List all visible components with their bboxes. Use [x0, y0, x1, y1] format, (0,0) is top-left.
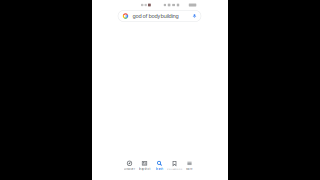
button[interactable]: Search — [152, 159, 167, 172]
button[interactable]: Snapshot — [137, 159, 152, 172]
staticText: Collections — [167, 167, 182, 170]
staticText: Discover — [124, 167, 135, 171]
staticText: More — [186, 167, 193, 171]
staticText: Search — [155, 167, 163, 171]
staticText: god of bodybuilding — [132, 12, 178, 20]
button[interactable]: Collections — [167, 159, 182, 172]
staticText: Snapshot — [138, 167, 150, 171]
button[interactable]: Discover — [122, 159, 137, 172]
button[interactable]: More — [182, 159, 197, 172]
button[interactable]: god of bodybuilding — [118, 10, 201, 21]
